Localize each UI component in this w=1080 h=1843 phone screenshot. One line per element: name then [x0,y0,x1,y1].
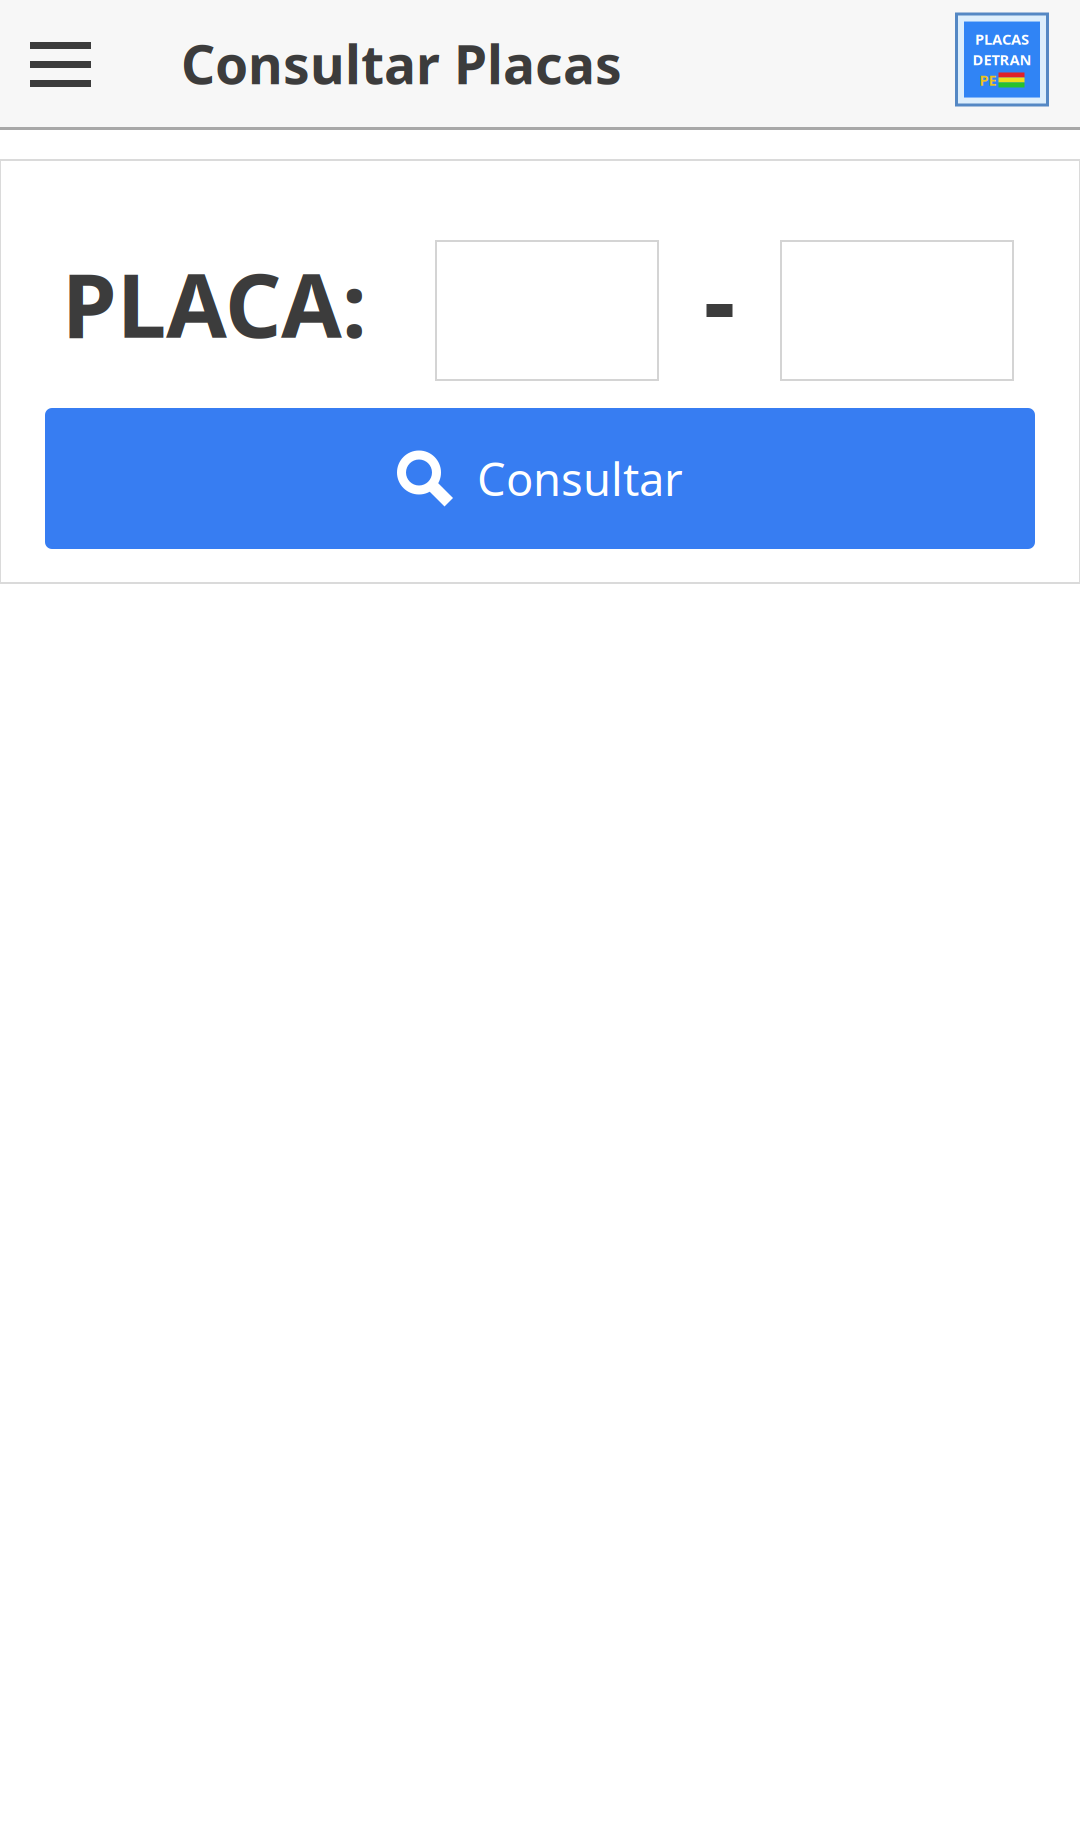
button[interactable]: Letras da placa [436,241,658,380]
staticText: PLACA: [62,245,367,362]
button[interactable]: Menu [0,0,181,126]
staticText: Consultar Placas [181,28,622,99]
button[interactable]: Placas Detran PE [954,0,1080,126]
staticText: Consultar [477,448,683,509]
button[interactable]: Números da placa [781,241,1013,380]
staticText: DETRAN [972,50,1031,69]
staticText: PE [979,70,996,90]
staticText: PLACAS [975,29,1029,49]
button[interactable]: Consultar [45,408,1035,549]
